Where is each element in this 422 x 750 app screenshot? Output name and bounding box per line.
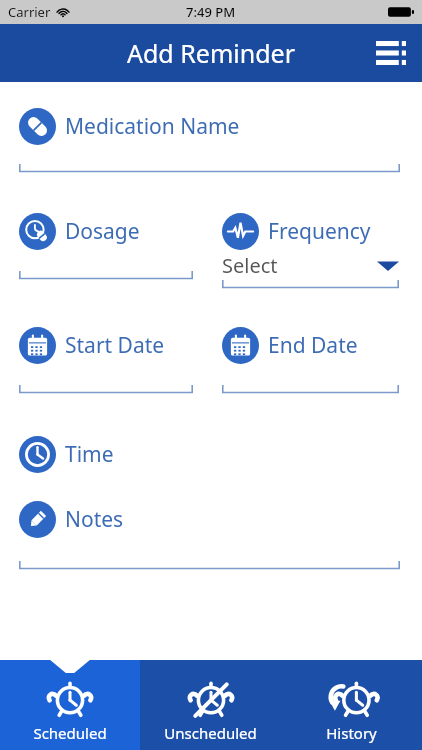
staticText: Carrier	[8, 3, 51, 21]
staticText: Unscheduled	[164, 723, 257, 743]
staticText: Scheduled	[33, 723, 107, 743]
staticText: Add Reminder	[127, 36, 295, 70]
button[interactable]: Dosage	[19, 213, 140, 250]
staticText: History	[326, 723, 377, 743]
staticText: 7:49 PM	[186, 3, 236, 21]
button[interactable]: Scheduled	[0, 660, 140, 750]
staticText: Notes	[65, 505, 124, 534]
button[interactable]: Notes	[19, 501, 124, 538]
button[interactable]: Select	[222, 252, 399, 279]
staticText: Select	[222, 252, 278, 279]
button[interactable]: Medication Name	[19, 108, 240, 145]
button[interactable]: Time	[19, 436, 114, 473]
staticText: Time	[65, 440, 114, 469]
staticText: Dosage	[65, 217, 140, 246]
staticText: End Date	[268, 331, 358, 360]
staticText: Start Date	[65, 331, 165, 360]
button[interactable]: Unscheduled	[140, 660, 281, 750]
staticText: Medication Name	[65, 112, 240, 141]
staticText: Frequency	[268, 217, 371, 246]
button[interactable]: End Date	[222, 327, 358, 364]
button[interactable]: Frequency	[222, 213, 371, 250]
button[interactable]: Menu	[368, 30, 414, 76]
button[interactable]: History	[281, 660, 422, 750]
button[interactable]: Start Date	[19, 327, 165, 364]
